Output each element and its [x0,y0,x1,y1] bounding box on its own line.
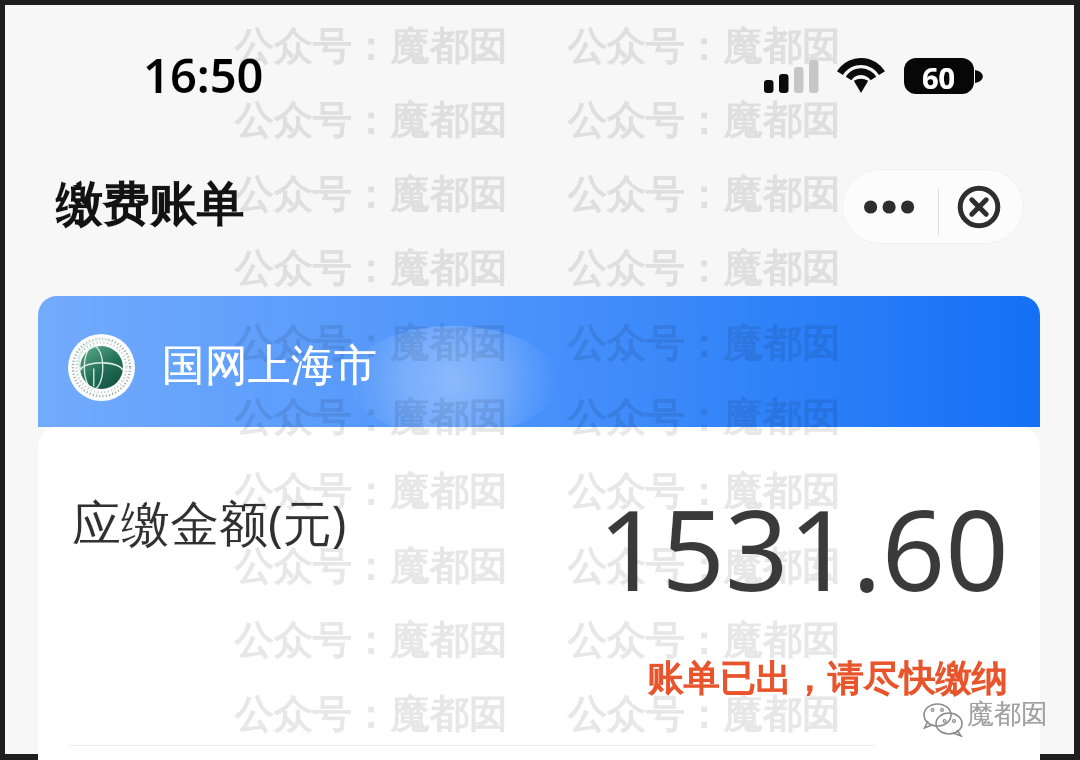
staticText: 国网上海市 [162,339,377,393]
staticText: 公众号：魔都囡 [567,170,840,219]
staticText: 公众号：魔都囡 [234,170,507,219]
staticText: 公众号：魔都囡 [567,244,840,293]
staticText: 1531.60 [598,472,1009,623]
staticText: 应缴金额(元) [72,489,347,556]
staticText: 公众号：魔都囡 [234,393,507,442]
staticText: 公众号：魔都囡 [567,467,840,516]
staticText: 公众号：魔都囡 [234,616,507,665]
staticText: 公众号：魔都囡 [234,467,507,516]
staticText: 公众号：魔都囡 [567,393,840,442]
staticText: 缴费账单 [55,176,243,235]
staticText: 魔都囡 [967,697,1048,731]
staticText: 账单已出，请尽快缴纳 [647,656,1007,701]
staticText: 公众号：魔都囡 [567,690,840,739]
staticText: 公众号：魔都囡 [567,96,840,145]
staticText: 公众号：魔都囡 [234,96,507,145]
staticText: 公众号：魔都囡 [234,22,507,71]
button[interactable]: Close [933,169,1024,244]
staticText: 公众号：魔都囡 [234,690,507,739]
staticText: 公众号：魔都囡 [567,319,840,368]
staticText: 公众号：魔都囡 [234,319,507,368]
staticText: 公众号：魔都囡 [567,22,840,71]
staticText: 公众号：魔都囡 [234,244,507,293]
staticText: 公众号：魔都囡 [567,542,840,591]
button[interactable]: More options [842,169,933,244]
staticText: 公众号：魔都囡 [567,616,840,665]
button[interactable]: 国网上海市 [5,5,1074,754]
staticText: 16:50 [143,43,264,107]
staticText: 60 [922,58,956,94]
staticText: 公众号：魔都囡 [234,542,507,591]
